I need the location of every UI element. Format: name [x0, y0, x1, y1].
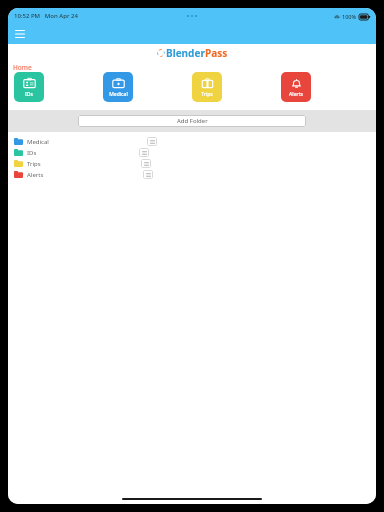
staticText: Trips: [201, 91, 213, 98]
staticText: Alerts: [289, 91, 303, 98]
staticText: Add Folder: [177, 117, 208, 125]
button[interactable]: Open navigation menu: [12, 26, 28, 42]
staticText: Blender: [166, 46, 205, 60]
staticText: IDs: [27, 149, 37, 157]
button[interactable]: Reorder Trips: [141, 159, 151, 168]
staticText: Alerts: [27, 171, 44, 179]
staticText: Medical: [109, 91, 128, 98]
button[interactable]: Medical: [8, 136, 376, 147]
staticText: Home: [13, 63, 32, 72]
button[interactable]: Reorder Alerts: [143, 170, 153, 179]
button[interactable]: Trips: [8, 158, 376, 169]
staticText: Medical: [27, 138, 49, 146]
button[interactable]: Trips: [192, 72, 222, 102]
button[interactable]: IDs: [14, 72, 44, 102]
staticText: Pass: [205, 46, 228, 60]
staticText: 100%: [342, 13, 357, 20]
button[interactable]: Alerts: [8, 169, 376, 180]
staticText: IDs: [25, 91, 33, 98]
button[interactable]: Add Folder: [78, 115, 306, 127]
button[interactable]: Alerts: [281, 72, 311, 102]
button[interactable]: Reorder Medical: [147, 137, 157, 146]
button[interactable]: Medical: [103, 72, 133, 102]
staticText: 10:52 PM Mon Apr 24: [14, 12, 78, 20]
staticText: Trips: [27, 160, 41, 168]
button[interactable]: IDs: [8, 147, 376, 158]
button[interactable]: Reorder IDs: [139, 148, 149, 157]
